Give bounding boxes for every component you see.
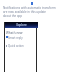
staticText: Quick action [8,44,24,48]
staticText: What's new [6,31,23,35]
staticText: are now available in this update [3,10,47,14]
staticText: Smart reply [8,36,23,40]
staticText: Notifications with automatic transform [3,6,56,10]
staticText: about the app [3,14,23,18]
staticText: Explore [16,23,27,27]
